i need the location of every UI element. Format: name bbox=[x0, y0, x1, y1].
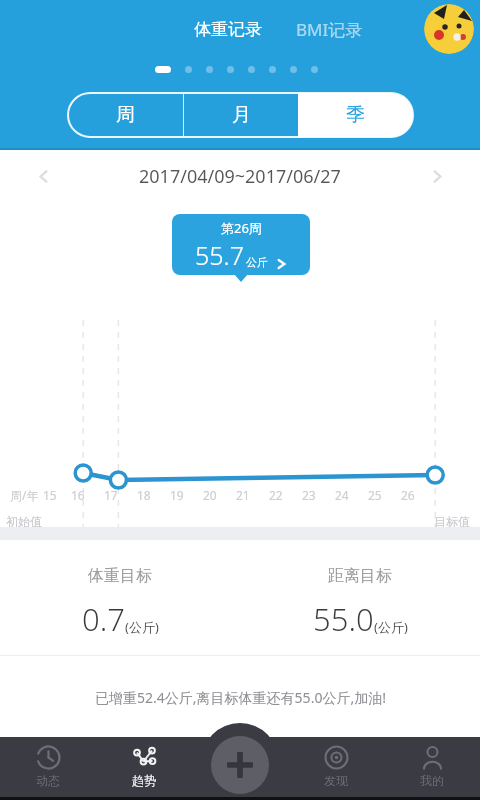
button[interactable]: 动态 bbox=[0, 737, 96, 800]
staticText: 周/年 bbox=[10, 487, 39, 503]
button[interactable]: Previous period bbox=[26, 159, 60, 193]
staticText: 26 bbox=[401, 487, 415, 503]
staticText: 23 bbox=[302, 487, 316, 503]
staticText: 21 bbox=[236, 487, 250, 503]
staticText: 22 bbox=[269, 487, 283, 503]
button[interactable]: 发现 bbox=[288, 737, 384, 800]
staticText: 24 bbox=[335, 487, 349, 503]
staticText: 公斤 bbox=[246, 255, 268, 269]
button[interactable]: 月 bbox=[184, 93, 298, 137]
staticText: 月 bbox=[232, 103, 251, 127]
button[interactable]: Next period bbox=[420, 159, 454, 193]
button[interactable]: 季 bbox=[298, 93, 413, 137]
staticText: 20 bbox=[203, 487, 217, 503]
button[interactable]: Profile bbox=[424, 4, 474, 54]
button[interactable]: Add record bbox=[211, 736, 269, 794]
staticText: 趋势 bbox=[132, 773, 156, 788]
staticText: 动态 bbox=[36, 773, 60, 788]
staticText: 19 bbox=[170, 487, 184, 503]
staticText: 周 bbox=[116, 103, 135, 127]
button[interactable]: 趋势 bbox=[96, 737, 192, 800]
staticText: BMI记录 bbox=[296, 18, 363, 41]
staticText: 25 bbox=[368, 487, 382, 503]
staticText: 体重记录 bbox=[194, 19, 262, 40]
staticText: 55.7 bbox=[195, 238, 244, 272]
button[interactable]: 体重记录 bbox=[190, 13, 266, 46]
staticText: 第26周 bbox=[221, 219, 262, 237]
staticText: 距离目标 bbox=[328, 566, 392, 586]
button[interactable]: 我的 bbox=[384, 737, 480, 800]
staticText: 3.3 bbox=[14, 529, 31, 545]
staticText: 0.7 bbox=[443, 529, 460, 545]
staticText: (公斤) bbox=[374, 618, 408, 636]
staticText: 我的 bbox=[420, 773, 444, 788]
staticText: 体重目标 bbox=[88, 566, 152, 586]
button[interactable]: 周 bbox=[68, 93, 183, 137]
staticText: 15 bbox=[43, 487, 57, 503]
staticText: 2017/04/09~2017/06/27 bbox=[139, 164, 341, 189]
button[interactable]: 距离目标 bbox=[240, 540, 480, 655]
staticText: 16 bbox=[71, 487, 85, 503]
staticText: 发现 bbox=[324, 773, 348, 788]
staticText: 目标值 bbox=[434, 514, 470, 529]
staticText: 18 bbox=[137, 487, 151, 503]
button[interactable]: 体重目标 bbox=[0, 540, 240, 655]
button[interactable]: 第26周 bbox=[172, 214, 310, 275]
staticText: 初始值 bbox=[6, 514, 42, 529]
staticText: 已增重52.4公斤,离目标体重还有55.0公斤,加油! bbox=[95, 688, 386, 707]
staticText: 55.0 bbox=[313, 598, 374, 640]
staticText: 17 bbox=[104, 487, 118, 503]
staticText: (公斤) bbox=[125, 618, 159, 636]
button[interactable]: BMI记录 bbox=[292, 12, 367, 47]
staticText: 0.7 bbox=[82, 598, 125, 640]
staticText: 季 bbox=[346, 103, 365, 127]
